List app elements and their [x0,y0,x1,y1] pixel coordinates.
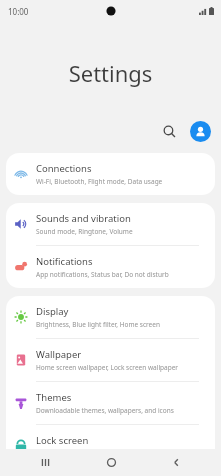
button[interactable]: Lock screen [6,425,215,467]
button[interactable]: Display [6,296,215,338]
staticText: Sounds and vibration [36,212,131,225]
staticText: Sound mode, Ringtone, Volume [36,227,133,236]
staticText: Connections [36,162,92,175]
button[interactable]: Search [156,118,182,144]
staticText: Settings [0,58,221,88]
staticText: 10:00 [8,6,29,17]
staticText: Downloadable themes, wallpapers, and ico… [36,406,174,415]
staticText: Themes [36,391,72,404]
button[interactable]: Notifications [6,246,215,288]
button[interactable]: Sounds and vibration [6,203,215,245]
staticText: App notifications, Status bar, Do not di… [36,270,169,279]
staticText: Brightness, Blue light filter, Home scre… [36,320,160,329]
staticText: Wallpaper [36,348,82,361]
staticText: Home screen wallpaper, Lock screen wallp… [36,363,179,372]
button[interactable]: Connections [6,153,215,195]
staticText: Display [36,305,69,318]
button[interactable]: Home [91,449,131,476]
staticText: Wi-Fi, Bluetooth, Flight mode, Data usag… [36,177,163,186]
button[interactable]: Account [190,121,211,142]
staticText: Lock screen [36,434,89,447]
button[interactable]: Themes [6,382,215,424]
button[interactable]: Recents [25,449,65,476]
button[interactable]: Back [156,449,196,476]
staticText: Notifications [36,255,93,268]
button[interactable]: Wallpaper [6,339,215,381]
